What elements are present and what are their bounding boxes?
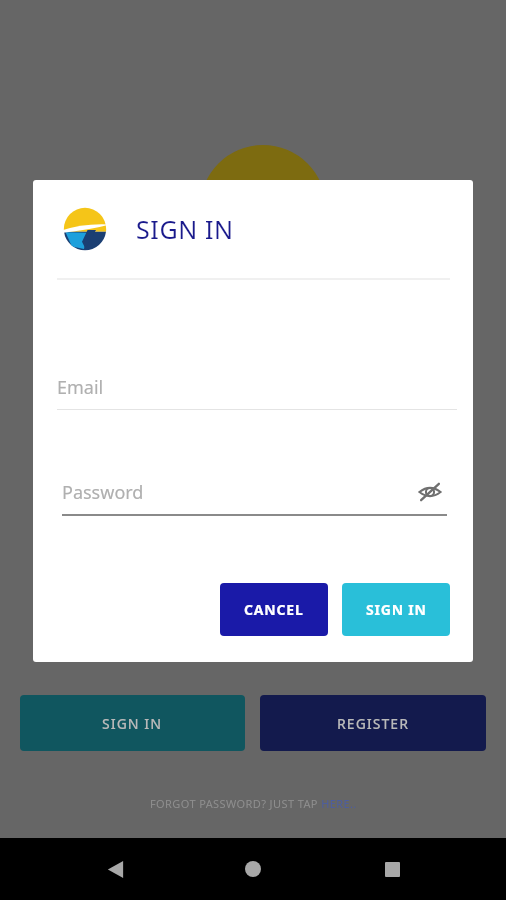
button[interactable]: Recent apps xyxy=(368,845,416,893)
button[interactable]: Show password xyxy=(413,475,447,509)
staticText: Email xyxy=(57,375,104,400)
staticText: REGISTER xyxy=(337,714,409,733)
button[interactable]: SIGN IN xyxy=(342,583,450,636)
staticText: SIGN IN xyxy=(102,714,163,733)
staticText: SIGN IN xyxy=(366,600,427,619)
staticText: Password xyxy=(62,480,144,505)
button[interactable]: Back xyxy=(91,845,139,893)
button[interactable]: REGISTER xyxy=(260,695,486,751)
staticText: SIGN IN xyxy=(136,212,234,246)
button[interactable]: Home xyxy=(229,845,277,893)
staticText: FORGOT PASSWORD? JUST TAP HERE.. xyxy=(150,796,357,811)
button[interactable]: Email xyxy=(57,365,457,409)
button[interactable]: Password xyxy=(62,470,447,514)
button[interactable]: CANCEL xyxy=(220,583,328,636)
button[interactable]: SIGN IN xyxy=(20,695,245,751)
staticText: CANCEL xyxy=(244,600,304,619)
